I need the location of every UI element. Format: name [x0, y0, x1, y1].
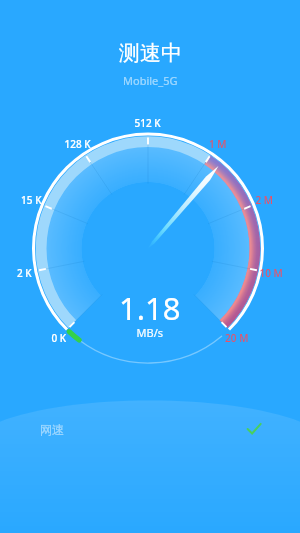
staticText: 测速中	[119, 40, 182, 66]
other: Completed	[246, 421, 262, 437]
staticText: 网速	[40, 422, 64, 437]
staticText: Mobile_5G	[123, 73, 178, 88]
button[interactable]: 网速	[0, 412, 300, 446]
